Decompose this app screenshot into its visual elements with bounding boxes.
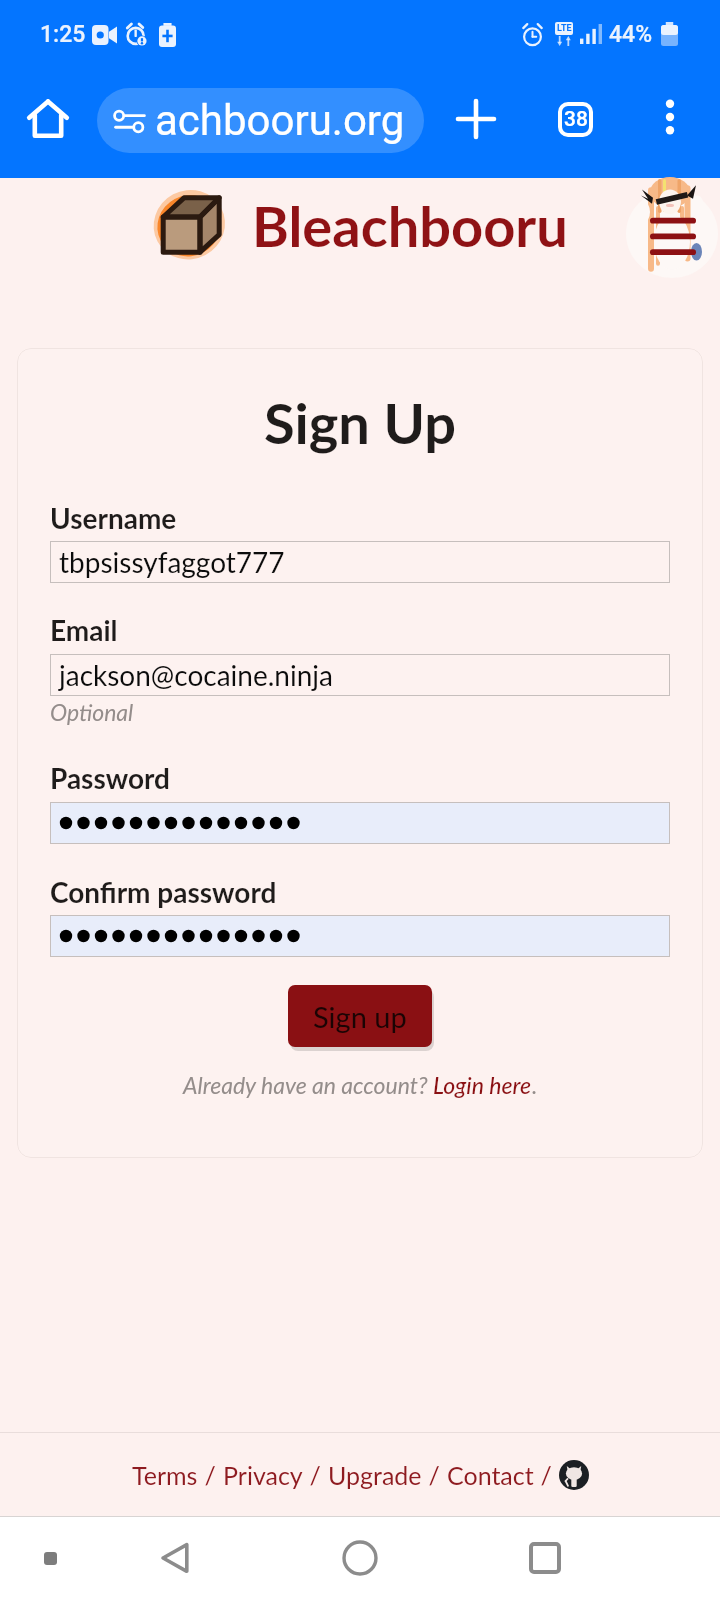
button[interactable] <box>50 802 670 844</box>
staticText: Already have an account? <box>183 1071 433 1099</box>
staticText: Contact <box>447 1460 534 1490</box>
button[interactable]: GitHub <box>559 1460 589 1490</box>
button[interactable]: New tab <box>446 89 506 149</box>
staticText: jackson@cocaine.ninja <box>59 658 333 692</box>
staticText: Password <box>50 761 170 795</box>
staticText: Sign Up <box>17 389 703 456</box>
button[interactable]: tbpsissyfaggot777 <box>50 541 670 583</box>
staticText: / <box>198 1460 223 1490</box>
staticText: Terms <box>132 1460 198 1490</box>
staticText: LTE <box>557 23 572 34</box>
button[interactable]: Terms <box>132 1460 198 1490</box>
button[interactable] <box>50 915 670 957</box>
button[interactable]: Back <box>150 1532 202 1584</box>
button[interactable]: Privacy <box>223 1460 303 1490</box>
button[interactable]: achbooru.org <box>97 88 424 153</box>
button[interactable]: Contact <box>447 1460 534 1490</box>
staticText: . <box>532 1071 538 1099</box>
staticText: Bleachbooru <box>252 192 568 259</box>
staticText: tbpsissyfaggot777 <box>59 545 285 579</box>
button[interactable]: Hide keyboard <box>26 1534 74 1582</box>
button[interactable]: Home <box>18 89 78 149</box>
staticText: Sign up <box>313 999 407 1034</box>
button[interactable]: Upgrade <box>328 1460 422 1490</box>
staticText: Username <box>50 501 177 535</box>
staticText: Email <box>50 613 118 647</box>
button[interactable]: Menu <box>620 175 720 278</box>
button[interactable]: More options <box>642 89 698 145</box>
staticText: / <box>303 1460 328 1490</box>
staticText: / <box>534 1460 559 1490</box>
staticText: Privacy <box>223 1460 303 1490</box>
button[interactable]: Tabs <box>545 89 605 149</box>
staticText: 44% <box>609 21 653 48</box>
staticText: Optional <box>50 698 134 726</box>
staticText: / <box>422 1460 447 1490</box>
staticText: achbooru.org <box>155 96 405 145</box>
button[interactable]: Login here <box>433 1071 532 1099</box>
button[interactable]: Recent apps <box>519 1532 571 1584</box>
staticText: Confirm password <box>50 875 277 909</box>
staticText: 38 <box>564 107 588 132</box>
button[interactable]: Home <box>334 1532 386 1584</box>
staticText: 1:25 <box>40 21 86 48</box>
button[interactable]: jackson@cocaine.ninja <box>50 654 670 696</box>
button[interactable]: Sign up <box>288 985 432 1047</box>
staticText: Login here <box>433 1071 532 1099</box>
staticText: Upgrade <box>328 1460 422 1490</box>
